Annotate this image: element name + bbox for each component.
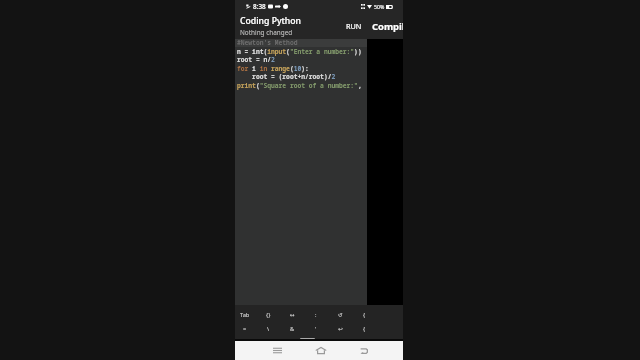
button[interactable]: { bbox=[352, 308, 367, 322]
staticText: n = int(input("Enter a number:")) bbox=[237, 47, 362, 56]
button[interactable]: { bbox=[352, 322, 367, 336]
staticText: ↩ bbox=[338, 326, 343, 333]
staticText: = bbox=[243, 325, 247, 333]
button[interactable]: Compile bbox=[370, 16, 403, 37]
staticText: 50% bbox=[374, 3, 385, 10]
staticText: Tab bbox=[240, 311, 250, 319]
button[interactable]: Home bbox=[299, 341, 342, 360]
button[interactable]: \ bbox=[256, 322, 280, 336]
button[interactable]: Back bbox=[342, 341, 385, 360]
staticText: { bbox=[363, 311, 366, 319]
button[interactable]: ↺ bbox=[328, 308, 352, 322]
staticText: ' bbox=[315, 325, 317, 333]
staticText: Compile bbox=[372, 20, 403, 33]
staticText: root = n/2 bbox=[237, 55, 275, 64]
button[interactable]: Recents bbox=[255, 341, 299, 360]
button[interactable]: Tab bbox=[235, 308, 256, 322]
staticText: print("Square root of a number:", bbox=[237, 81, 362, 90]
staticText: & bbox=[290, 325, 295, 333]
staticText: Nothing changed bbox=[240, 28, 293, 37]
button[interactable]: & bbox=[280, 322, 304, 336]
staticText: root = (root+n/root)/2 bbox=[237, 72, 336, 81]
staticText: { bbox=[363, 325, 366, 333]
staticText: 8:38 bbox=[253, 2, 266, 11]
staticText: RUN bbox=[346, 21, 362, 31]
staticText: Coding Python bbox=[240, 15, 302, 27]
button[interactable]: {} bbox=[256, 308, 280, 322]
staticText: {} bbox=[266, 311, 271, 319]
staticText: for i in range(10): bbox=[237, 64, 309, 73]
button[interactable]: ↔ bbox=[280, 308, 304, 322]
staticText: ↔ bbox=[290, 312, 295, 319]
button[interactable]: ' bbox=[304, 322, 328, 336]
staticText: \ bbox=[267, 325, 270, 333]
button[interactable]: : bbox=[304, 308, 328, 322]
staticText: : bbox=[315, 311, 317, 319]
button[interactable]: = bbox=[235, 322, 256, 336]
button[interactable]: RUN bbox=[337, 17, 370, 35]
staticText: ↺ bbox=[338, 312, 343, 319]
button[interactable]: ↩ bbox=[328, 322, 352, 336]
staticText: #Newton's Method bbox=[237, 38, 298, 47]
